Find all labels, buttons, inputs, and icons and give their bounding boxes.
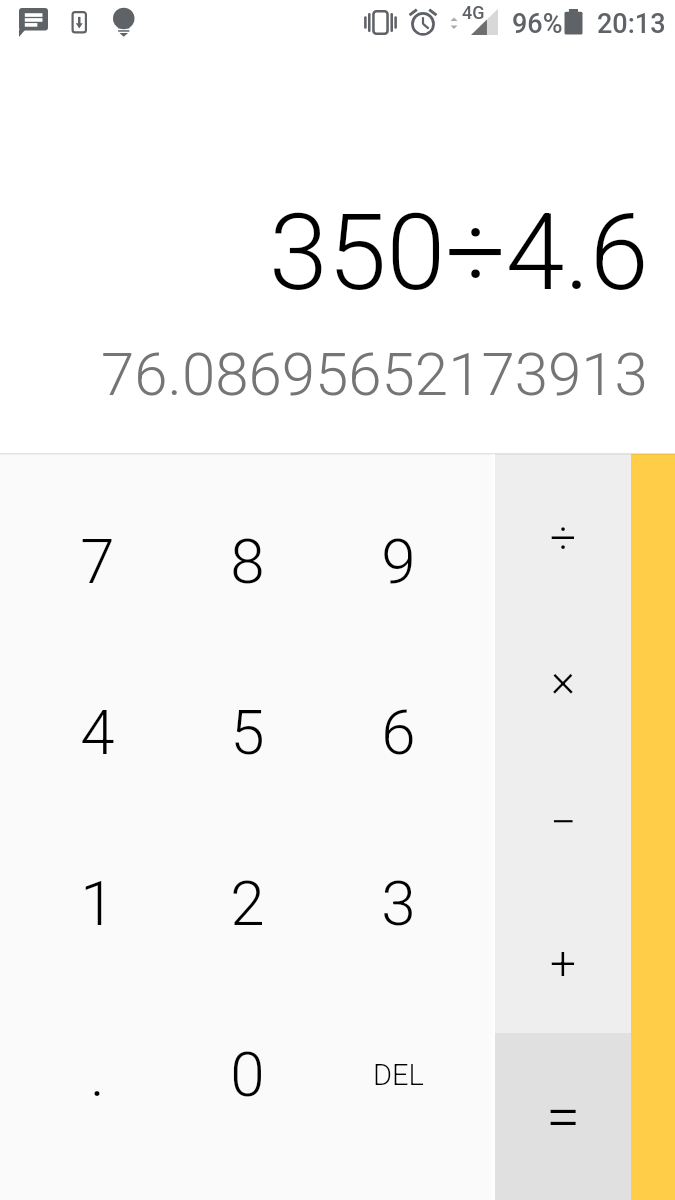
button[interactable]: Minus bbox=[495, 751, 631, 893]
button[interactable]: 3 bbox=[330, 818, 495, 989]
staticText: 3 bbox=[381, 867, 416, 940]
staticText: 96% bbox=[512, 8, 563, 40]
button[interactable]: 1 bbox=[0, 818, 165, 989]
staticText: = bbox=[546, 1080, 581, 1153]
staticText: 20:13 bbox=[597, 8, 666, 40]
button[interactable]: 4 bbox=[0, 647, 165, 818]
button[interactable]: DEL bbox=[330, 989, 495, 1160]
staticText: 9 bbox=[381, 525, 416, 598]
staticText: 8 bbox=[230, 525, 265, 598]
staticText: 350÷4.6 bbox=[269, 191, 649, 315]
button[interactable]: 6 bbox=[330, 647, 495, 818]
button[interactable]: 8 bbox=[165, 476, 330, 647]
staticText: × bbox=[551, 653, 576, 707]
staticText: − bbox=[550, 795, 577, 849]
staticText: . bbox=[90, 1038, 105, 1111]
button[interactable]: 2 bbox=[165, 818, 330, 989]
staticText: 2 bbox=[230, 867, 265, 940]
staticText: 5 bbox=[230, 696, 265, 769]
button[interactable]: 7 bbox=[0, 476, 165, 647]
button[interactable]: 9 bbox=[330, 476, 495, 647]
button[interactable]: Plus bbox=[495, 893, 631, 1033]
staticText: 0 bbox=[230, 1038, 265, 1111]
staticText: ÷ bbox=[550, 511, 577, 565]
staticText: 6 bbox=[381, 696, 416, 769]
staticText: 1 bbox=[80, 867, 115, 940]
button[interactable]: 0 bbox=[165, 989, 330, 1160]
staticText: + bbox=[550, 936, 576, 990]
staticText: 7 bbox=[80, 525, 115, 598]
staticText: DEL bbox=[373, 1058, 424, 1092]
staticText: 4G bbox=[462, 2, 485, 23]
staticText: 76.08695652173913 bbox=[101, 339, 648, 409]
staticText: 4 bbox=[80, 696, 115, 769]
button[interactable]: Equals bbox=[495, 1033, 631, 1200]
button[interactable]: Divide bbox=[495, 467, 631, 609]
button[interactable]: . bbox=[0, 989, 165, 1160]
button[interactable]: 5 bbox=[165, 647, 330, 818]
button[interactable]: Multiply bbox=[495, 609, 631, 751]
